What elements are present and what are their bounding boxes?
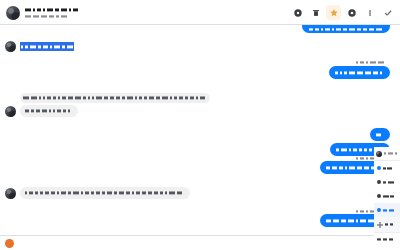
button[interactable]: More options [362,5,377,20]
button[interactable] [21,42,73,51]
button[interactable]: Settings [290,5,305,20]
button[interactable]: Delete [308,5,323,20]
button[interactable] [377,161,400,175]
button[interactable] [330,143,390,156]
button[interactable] [20,93,210,103]
button[interactable] [377,175,400,189]
button[interactable]: Star [326,5,341,20]
button[interactable] [20,187,190,199]
button[interactable] [377,203,400,217]
button[interactable] [377,233,400,246]
button[interactable]: Mail [344,5,359,20]
button[interactable] [329,66,390,79]
button[interactable] [20,105,78,117]
button[interactable]: Add [377,217,400,232]
button[interactable] [370,128,390,141]
button[interactable] [320,161,390,174]
button[interactable]: Attach [5,239,14,248]
button[interactable]: Done [380,5,395,20]
button[interactable] [320,214,390,227]
button[interactable] [302,25,390,33]
button[interactable] [377,189,400,203]
